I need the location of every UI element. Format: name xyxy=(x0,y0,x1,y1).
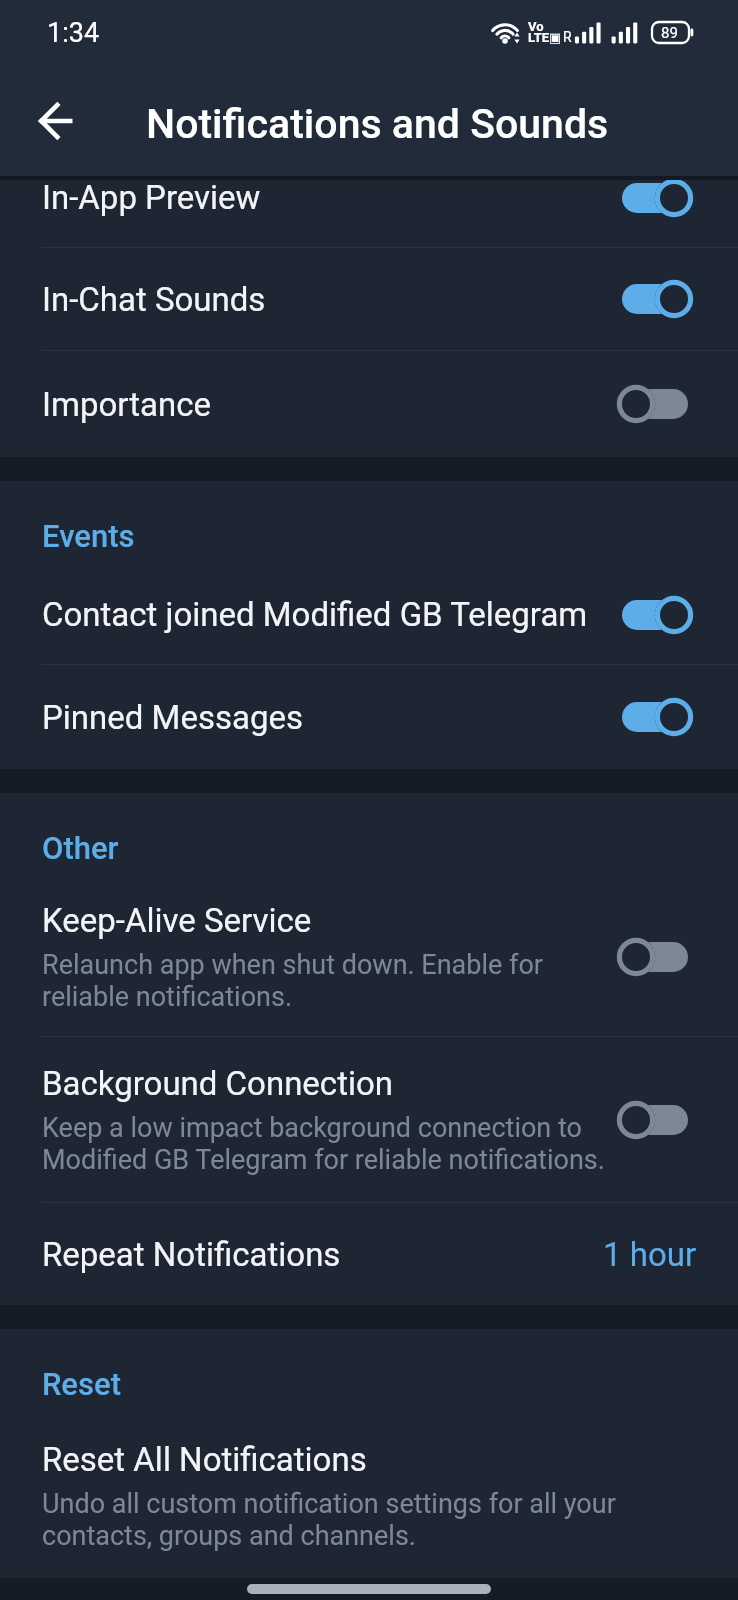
button[interactable]: Keep-Alive Service xyxy=(0,877,738,1036)
staticText: In-Chat Sounds xyxy=(42,280,266,319)
button[interactable]: Toggle on xyxy=(607,180,703,230)
staticText: In-App Preview xyxy=(42,180,261,217)
staticText: Contact joined Modified GB Telegram xyxy=(42,595,588,634)
button[interactable]: Repeat Notifications xyxy=(0,1203,738,1305)
staticText: Keep-Alive Service xyxy=(42,901,312,940)
button[interactable]: Importance xyxy=(0,351,738,457)
staticText: Vo xyxy=(528,19,544,34)
staticText: 1:34 xyxy=(47,17,100,49)
staticText: R xyxy=(563,29,572,45)
staticText: Pinned Messages xyxy=(42,698,303,737)
button[interactable]: Back xyxy=(22,87,90,155)
staticText: Undo all custom notification settings fo… xyxy=(42,1488,627,1551)
button[interactable]: Reset All Notifications xyxy=(0,1413,738,1578)
staticText: LTE▣ xyxy=(528,30,562,45)
button[interactable]: Toggle off xyxy=(607,925,703,989)
staticText: 1 hour xyxy=(603,1235,697,1274)
button[interactable]: Toggle on xyxy=(607,583,703,647)
button[interactable]: Toggle off xyxy=(607,1088,703,1152)
staticText: Notifications and Sounds xyxy=(146,100,609,148)
button[interactable]: Toggle off xyxy=(607,372,703,436)
staticText: Other xyxy=(42,830,119,866)
staticText: Events xyxy=(42,518,135,554)
staticText: Relaunch app when shut down. Enable for … xyxy=(42,949,627,1012)
button[interactable]: In-App Preview xyxy=(0,180,738,247)
button[interactable]: Background Connection xyxy=(0,1037,738,1202)
staticText: Importance xyxy=(42,385,211,424)
button[interactable]: Toggle on xyxy=(607,267,703,331)
button[interactable]: Toggle on xyxy=(607,685,703,749)
staticText: Keep a low impact background connection … xyxy=(42,1112,627,1175)
button[interactable]: In-Chat Sounds xyxy=(0,248,738,350)
staticText: Reset xyxy=(42,1366,121,1402)
button[interactable]: Pinned Messages xyxy=(0,665,738,769)
staticText: Reset All Notifications xyxy=(42,1440,367,1479)
staticText: Background Connection xyxy=(42,1064,393,1103)
staticText: 89 xyxy=(661,24,678,42)
button[interactable]: Contact joined Modified GB Telegram xyxy=(0,565,738,664)
staticText: Repeat Notifications xyxy=(42,1235,341,1274)
